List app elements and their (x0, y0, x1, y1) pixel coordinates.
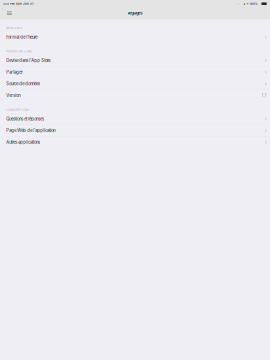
staticText: 1.1 (262, 93, 267, 98)
staticText: Sun Jan 27 (14, 2, 34, 5)
staticText: RÉGLAGES (6, 26, 22, 30)
button[interactable]: Partager (0, 66, 270, 78)
button[interactable]: Afficher la barre latérale (0, 8, 17, 18)
staticText: Réglages (127, 11, 142, 15)
staticText: Page Web de l'application (6, 128, 55, 133)
staticText: 100% (250, 2, 258, 5)
staticText: Autres applications (6, 140, 40, 145)
button[interactable]: Autres applications (0, 137, 270, 148)
button[interactable]: Page Web de l'application (0, 125, 270, 137)
staticText: 7:23 PM (3, 2, 14, 5)
button[interactable]: Version (0, 90, 270, 102)
staticText: LIONSAPP.COM (6, 108, 28, 111)
staticText: PHASES DE LUNE (6, 50, 32, 53)
button[interactable]: Devise dans l'App Store (0, 55, 270, 66)
staticText: Devise dans l'App Store (6, 58, 50, 63)
staticText: Partager (6, 70, 23, 75)
button[interactable]: Format de l'heure (0, 31, 270, 43)
staticText: Version (6, 93, 20, 98)
button[interactable]: Questions et réponses (0, 113, 270, 125)
staticText: Format de l'heure (6, 35, 37, 40)
button[interactable]: Source de données (0, 78, 270, 90)
staticText: Questions et réponses (6, 116, 44, 121)
staticText: Source de données (6, 81, 40, 86)
